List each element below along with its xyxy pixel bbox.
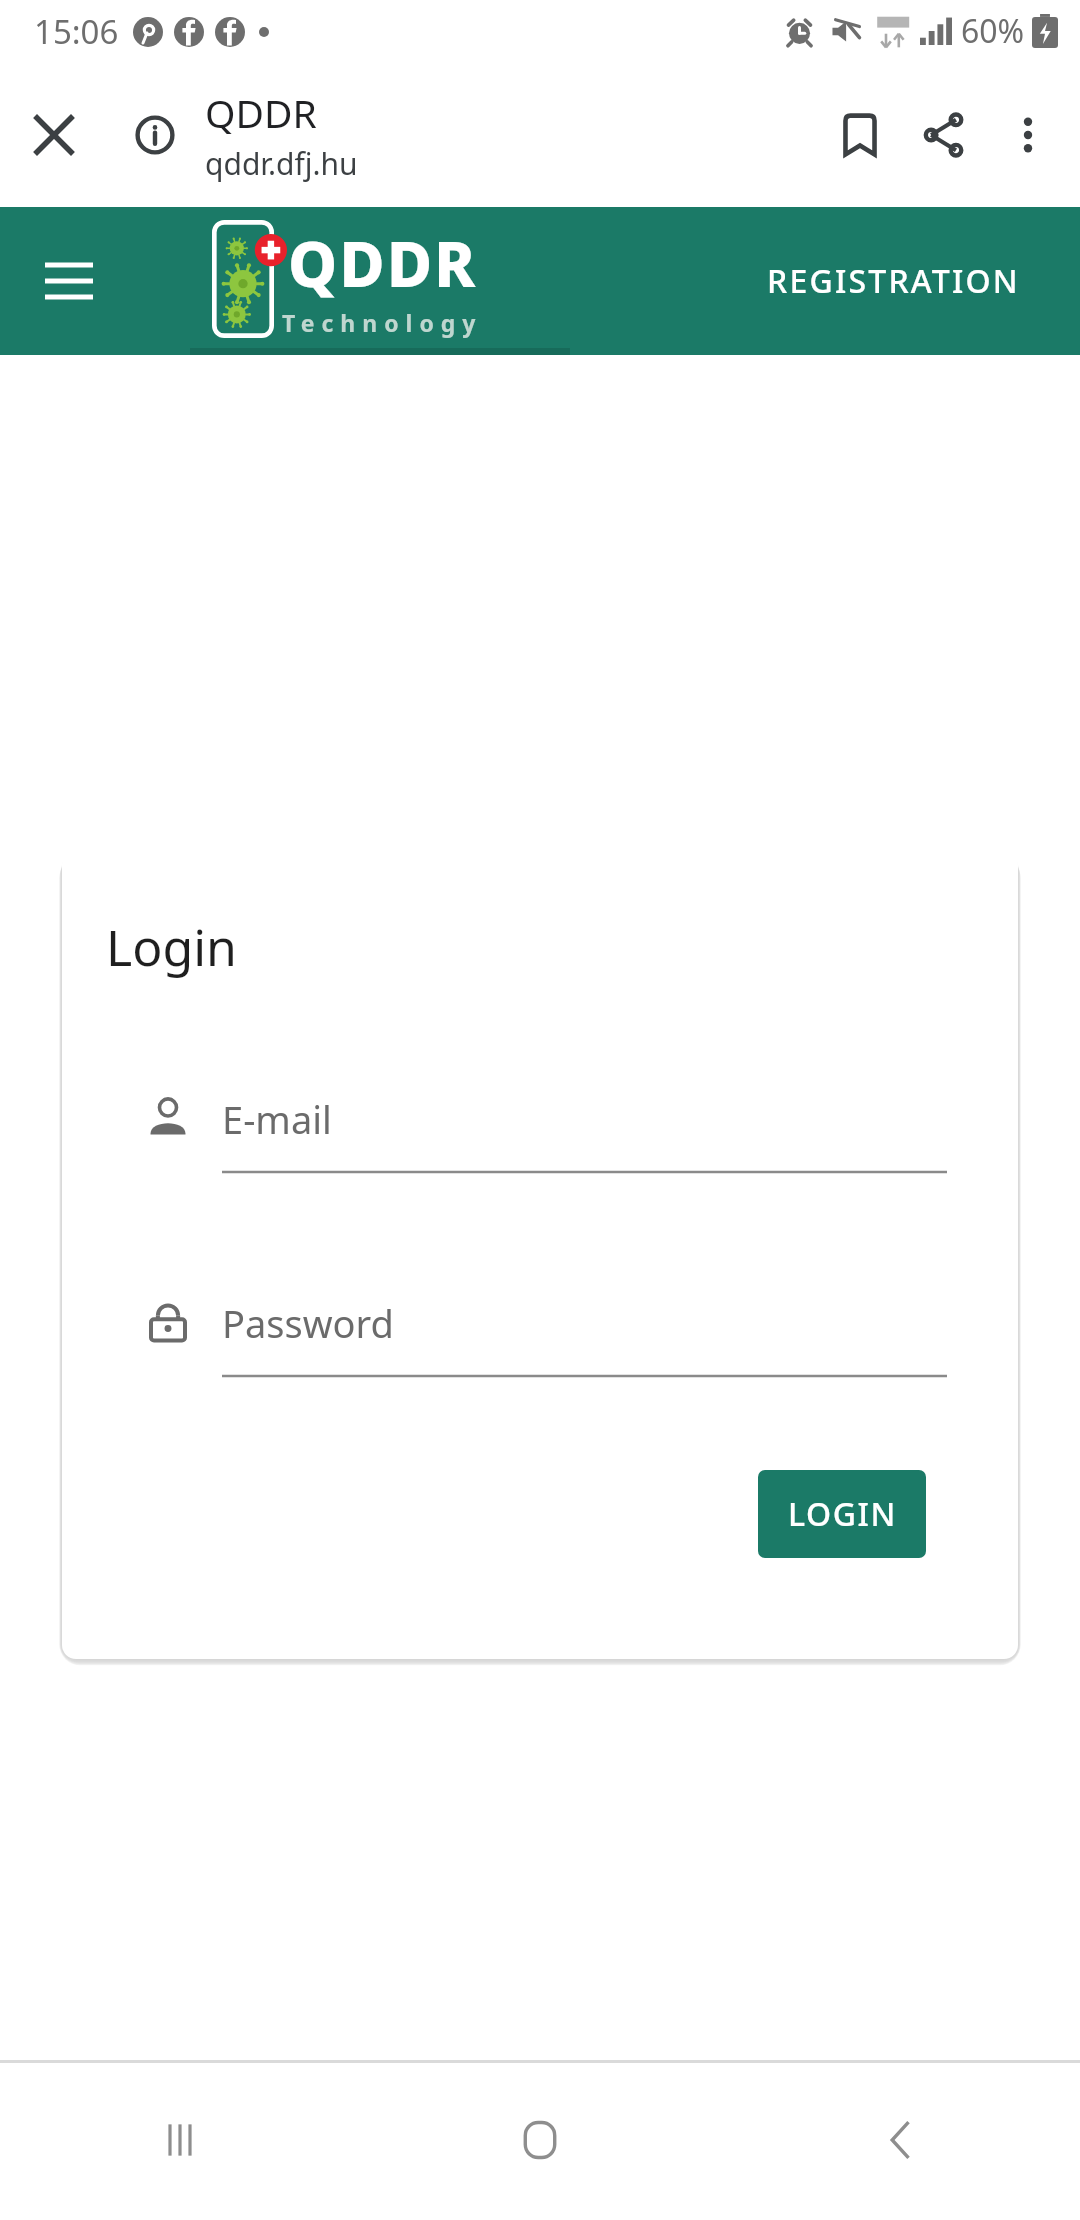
button[interactable]: Bookmark xyxy=(818,93,902,177)
staticText: QDDR xyxy=(288,221,478,305)
staticText: QDDR xyxy=(205,86,317,139)
staticText: 60% xyxy=(961,9,1025,53)
button[interactable]: Password xyxy=(62,1283,1018,1403)
button[interactable]: Share xyxy=(902,93,986,177)
staticText: Login xyxy=(106,913,237,981)
button[interactable]: Menu xyxy=(30,242,108,320)
staticText: LOGIN xyxy=(788,1492,897,1536)
staticText: E-mail xyxy=(222,1093,332,1145)
staticText: qddr.dfj.hu xyxy=(205,143,358,184)
staticText: Technology xyxy=(282,307,483,338)
button[interactable]: Recents xyxy=(0,2080,360,2200)
button[interactable]: Site information xyxy=(126,106,184,164)
button[interactable]: REGISTRATION xyxy=(759,247,1028,315)
staticText: REGISTRATION xyxy=(767,259,1020,303)
staticText: 15:06 xyxy=(34,9,119,54)
button[interactable]: Close xyxy=(16,97,92,173)
button[interactable]: E-mail xyxy=(62,1079,1018,1199)
button[interactable]: More options xyxy=(986,93,1070,177)
staticText: Password xyxy=(222,1297,394,1349)
button[interactable]: Back xyxy=(720,2080,1080,2200)
button[interactable]: Home xyxy=(360,2080,720,2200)
button[interactable]: LOGIN xyxy=(758,1470,926,1558)
